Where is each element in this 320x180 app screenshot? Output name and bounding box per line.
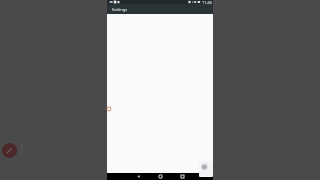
staticText: Settings	[112, 7, 128, 12]
button[interactable]: Stop recording	[2, 143, 17, 158]
button[interactable]: Back	[132, 173, 144, 180]
button[interactable]: Home	[154, 173, 166, 180]
button[interactable]: Recent apps	[176, 173, 188, 180]
button[interactable]: Floating action button	[199, 161, 213, 177]
staticText: 11:45	[202, 0, 212, 4]
